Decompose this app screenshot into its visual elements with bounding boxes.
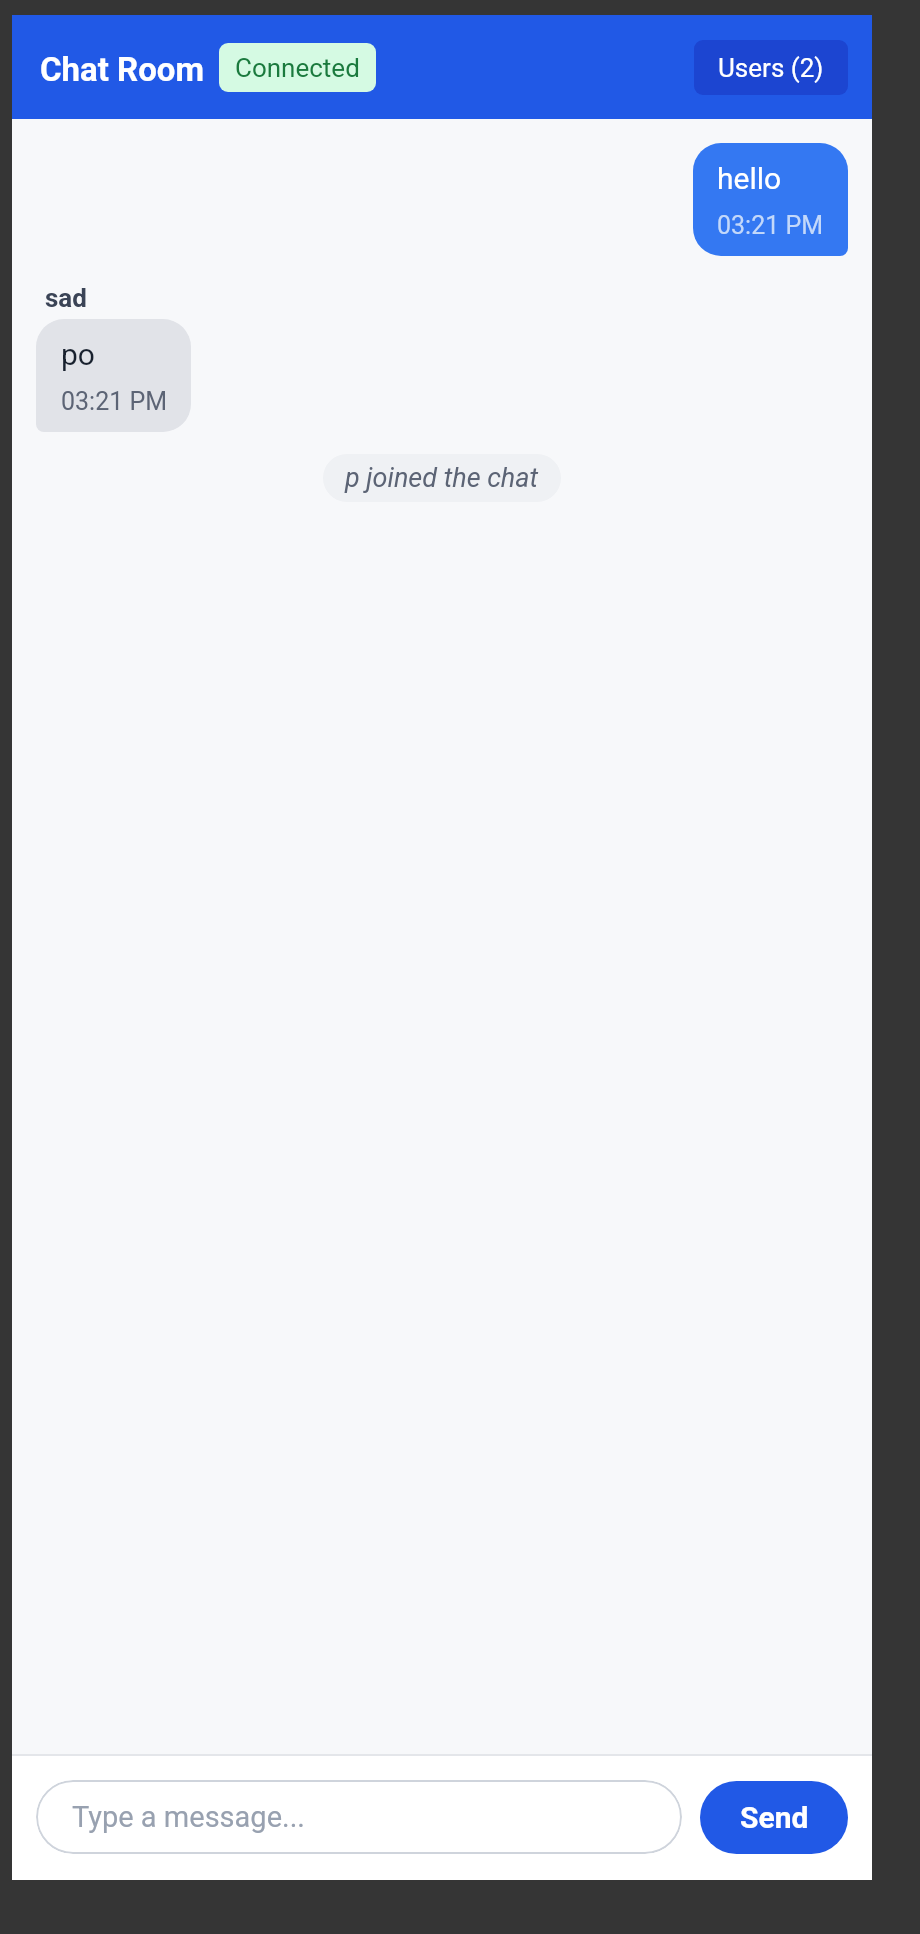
- staticText: Chat Room: [40, 50, 205, 89]
- staticText: 03:21 PM: [717, 211, 824, 240]
- staticText: Type a message...: [72, 1800, 305, 1834]
- staticText: sad: [45, 283, 87, 313]
- button[interactable]: Send: [700, 1781, 848, 1854]
- button[interactable]: Users (2): [694, 40, 848, 95]
- staticText: po: [61, 337, 95, 372]
- button[interactable]: Message input field: [36, 1780, 682, 1854]
- staticText: Connected: [235, 53, 360, 83]
- staticText: hello: [717, 161, 782, 196]
- button[interactable]: po: [36, 319, 191, 432]
- staticText: 03:21 PM: [61, 387, 168, 416]
- staticText: Send: [740, 1800, 809, 1835]
- button[interactable]: hello: [693, 143, 848, 256]
- staticText: Users (2): [718, 53, 824, 83]
- staticText: p joined the chat: [345, 462, 539, 494]
